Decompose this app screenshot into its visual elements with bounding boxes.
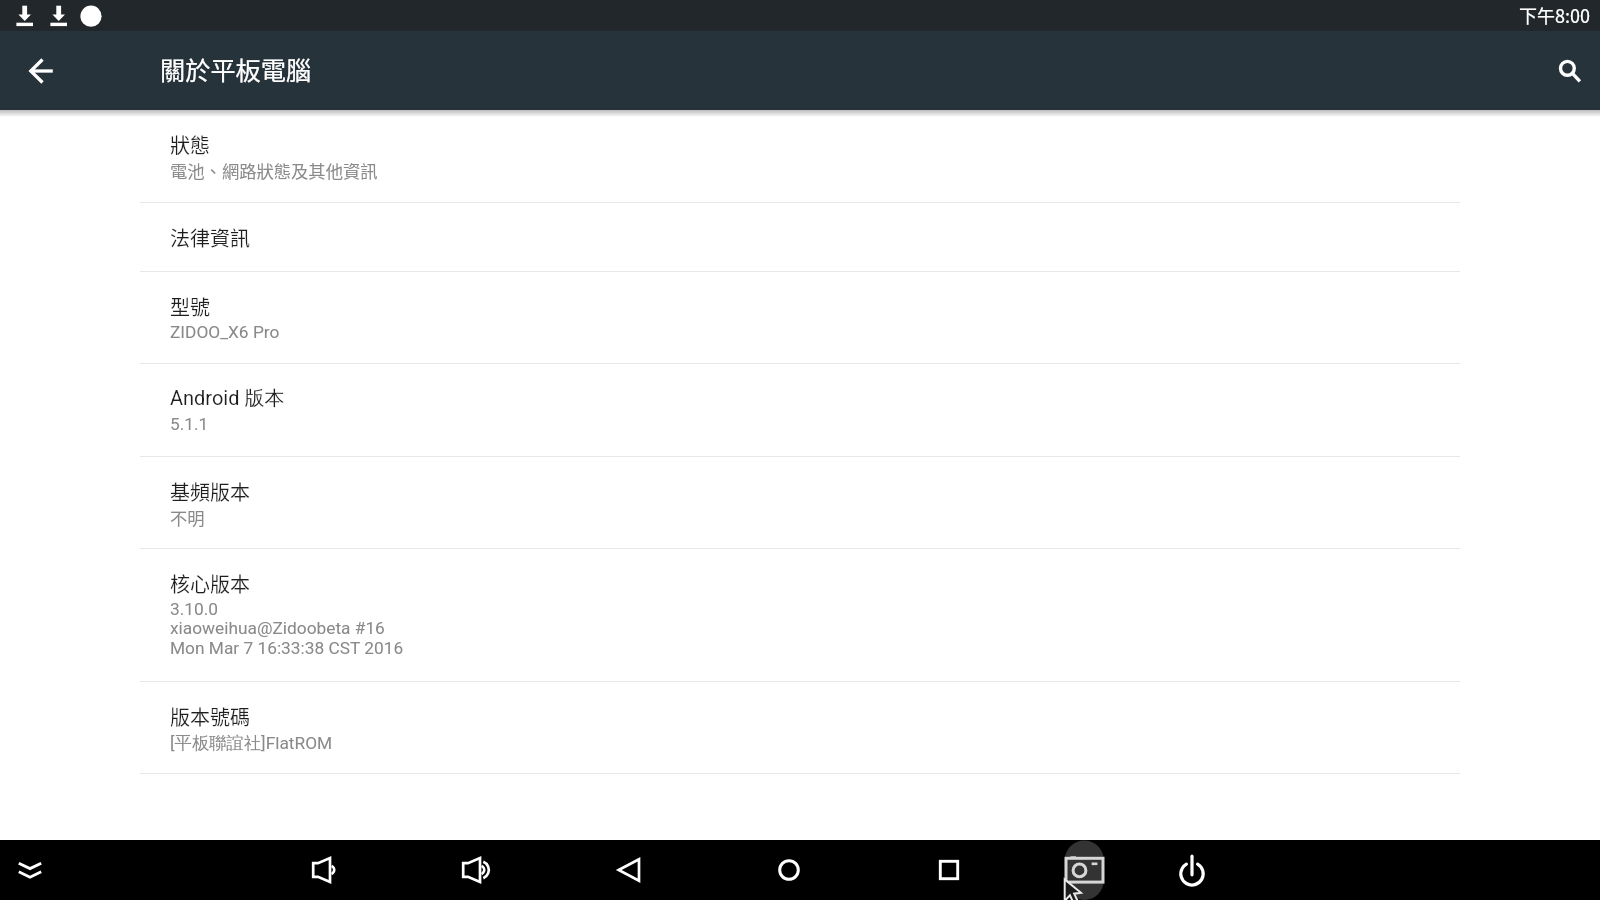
button[interactable]: 法律資訊 bbox=[0, 203, 1600, 272]
staticText: 狀態 bbox=[170, 130, 210, 159]
staticText: 基頻版本 bbox=[170, 477, 250, 506]
button[interactable]: 狀態 bbox=[0, 110, 1600, 203]
staticText: 型號 bbox=[170, 292, 210, 321]
button[interactable]: Power bbox=[1164, 840, 1220, 900]
button[interactable]: Screenshot bbox=[1065, 840, 1104, 900]
staticText: 法律資訊 bbox=[170, 223, 250, 252]
button[interactable]: Volume up bbox=[445, 840, 501, 900]
staticText: ZIDOO_X6 Pro bbox=[170, 322, 280, 342]
staticText: 不明 bbox=[170, 505, 205, 530]
button[interactable]: Hide navigation bar bbox=[2, 840, 58, 900]
button[interactable]: Recent apps bbox=[921, 840, 977, 900]
button[interactable]: 核心版本 bbox=[0, 549, 1600, 682]
staticText: 核心版本 bbox=[170, 569, 250, 598]
button[interactable]: Home bbox=[761, 840, 817, 900]
staticText: 關於平板電腦 bbox=[160, 51, 312, 87]
staticText: Android 版本 bbox=[170, 386, 285, 411]
button[interactable]: Search bbox=[1520, 31, 1600, 110]
button[interactable]: 型號 bbox=[0, 272, 1600, 364]
button[interactable]: 版本號碼 bbox=[0, 682, 1600, 774]
staticText: 電池、網路狀態及其他資訊 bbox=[170, 158, 378, 183]
button[interactable]: Back bbox=[601, 840, 657, 900]
staticText: [平板聯誼社]FlatROM bbox=[170, 732, 333, 754]
button[interactable]: Volume down bbox=[295, 840, 351, 900]
button[interactable]: Android 版本 bbox=[0, 364, 1600, 457]
staticText: 5.1.1 bbox=[170, 414, 209, 434]
button[interactable]: 基頻版本 bbox=[0, 457, 1600, 549]
staticText: 版本號碼 bbox=[170, 702, 250, 731]
staticText: 3.10.0 xiaoweihua@Zidoobeta #16 Mon Mar … bbox=[170, 599, 404, 659]
staticText: 下午8:00 bbox=[1519, 2, 1590, 28]
button[interactable]: Back bbox=[0, 31, 80, 110]
